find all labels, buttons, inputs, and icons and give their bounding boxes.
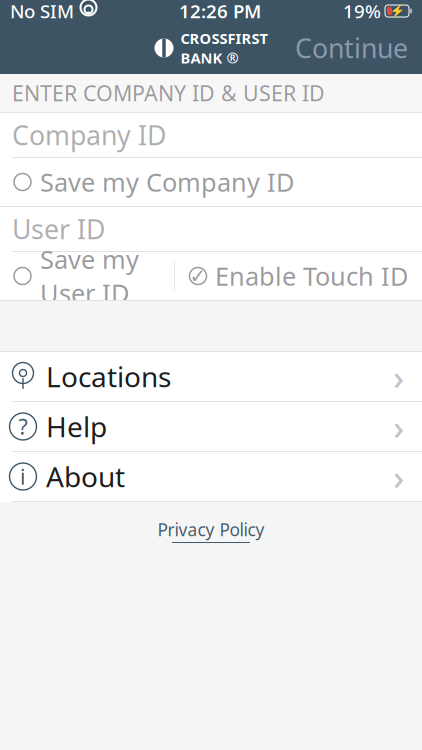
staticText: 19% — [343, 0, 381, 23]
button[interactable]: Locations — [0, 352, 422, 402]
staticText: Save my User ID — [40, 242, 139, 310]
staticText: ENTER COMPANY ID & USER ID — [12, 79, 325, 107]
staticText: About — [46, 458, 125, 495]
button[interactable]: Save my User ID — [0, 252, 174, 300]
staticText: CROSSFIRST — [180, 28, 267, 48]
staticText: Company ID — [12, 117, 166, 153]
staticText: › — [393, 403, 404, 449]
button[interactable]: Save my Company ID — [0, 158, 422, 206]
staticText: › — [393, 453, 404, 499]
staticText: BANK ® — [180, 48, 238, 67]
button[interactable]: Privacy Policy — [137, 502, 284, 553]
staticText: ⚡ — [389, 4, 404, 18]
staticText: ✓ — [189, 265, 206, 287]
staticText: Locations — [46, 358, 171, 395]
staticText: 12:26 PM — [179, 0, 261, 23]
button[interactable]: ✓ — [175, 252, 422, 300]
staticText: ? — [18, 412, 27, 441]
button[interactable]: ? — [0, 402, 422, 452]
button[interactable]: Continue — [281, 22, 422, 74]
staticText: Enable Touch ID — [215, 259, 408, 293]
button[interactable]: i — [0, 452, 422, 502]
staticText: Privacy Policy — [157, 518, 264, 541]
staticText: User ID — [12, 211, 105, 247]
staticText: Save my Company ID — [40, 165, 294, 199]
staticText: i — [20, 462, 26, 491]
staticText: No SIM — [10, 0, 74, 23]
staticText: Help — [46, 408, 107, 445]
staticText: › — [393, 353, 404, 399]
staticText: Continue — [295, 30, 408, 66]
